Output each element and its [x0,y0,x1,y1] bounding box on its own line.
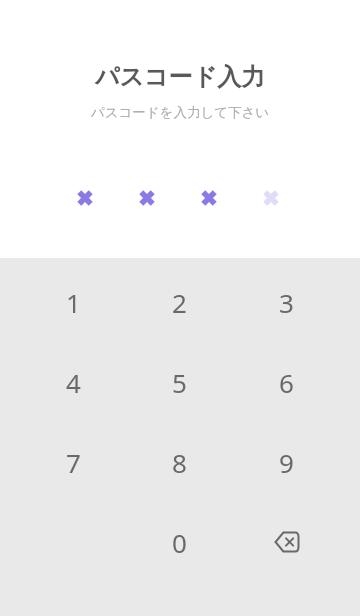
button[interactable]: 9 [233,422,340,502]
staticText: パスコードを入力して下さい [0,104,360,121]
staticText: 8 [172,445,187,480]
button[interactable]: 4 [20,342,126,422]
staticText: 0 [172,525,187,560]
staticText: 5 [172,365,187,400]
button[interactable]: 7 [20,422,126,502]
staticText: パスコード入力 [0,62,360,92]
staticText: 2 [172,285,187,320]
button[interactable]: 6 [233,342,340,422]
staticText: 1 [66,285,81,320]
button[interactable]: 2 [126,262,233,342]
staticText: 4 [66,365,81,400]
button[interactable] [233,502,340,582]
staticText: 7 [66,445,81,480]
staticText: 6 [279,365,294,400]
button[interactable]: 1 [20,262,126,342]
button[interactable]: 5 [126,342,233,422]
staticText: 9 [279,445,294,480]
button[interactable]: 3 [233,262,340,342]
button[interactable]: 8 [126,422,233,502]
button[interactable]: 0 [126,502,233,582]
staticText: 3 [279,285,294,320]
